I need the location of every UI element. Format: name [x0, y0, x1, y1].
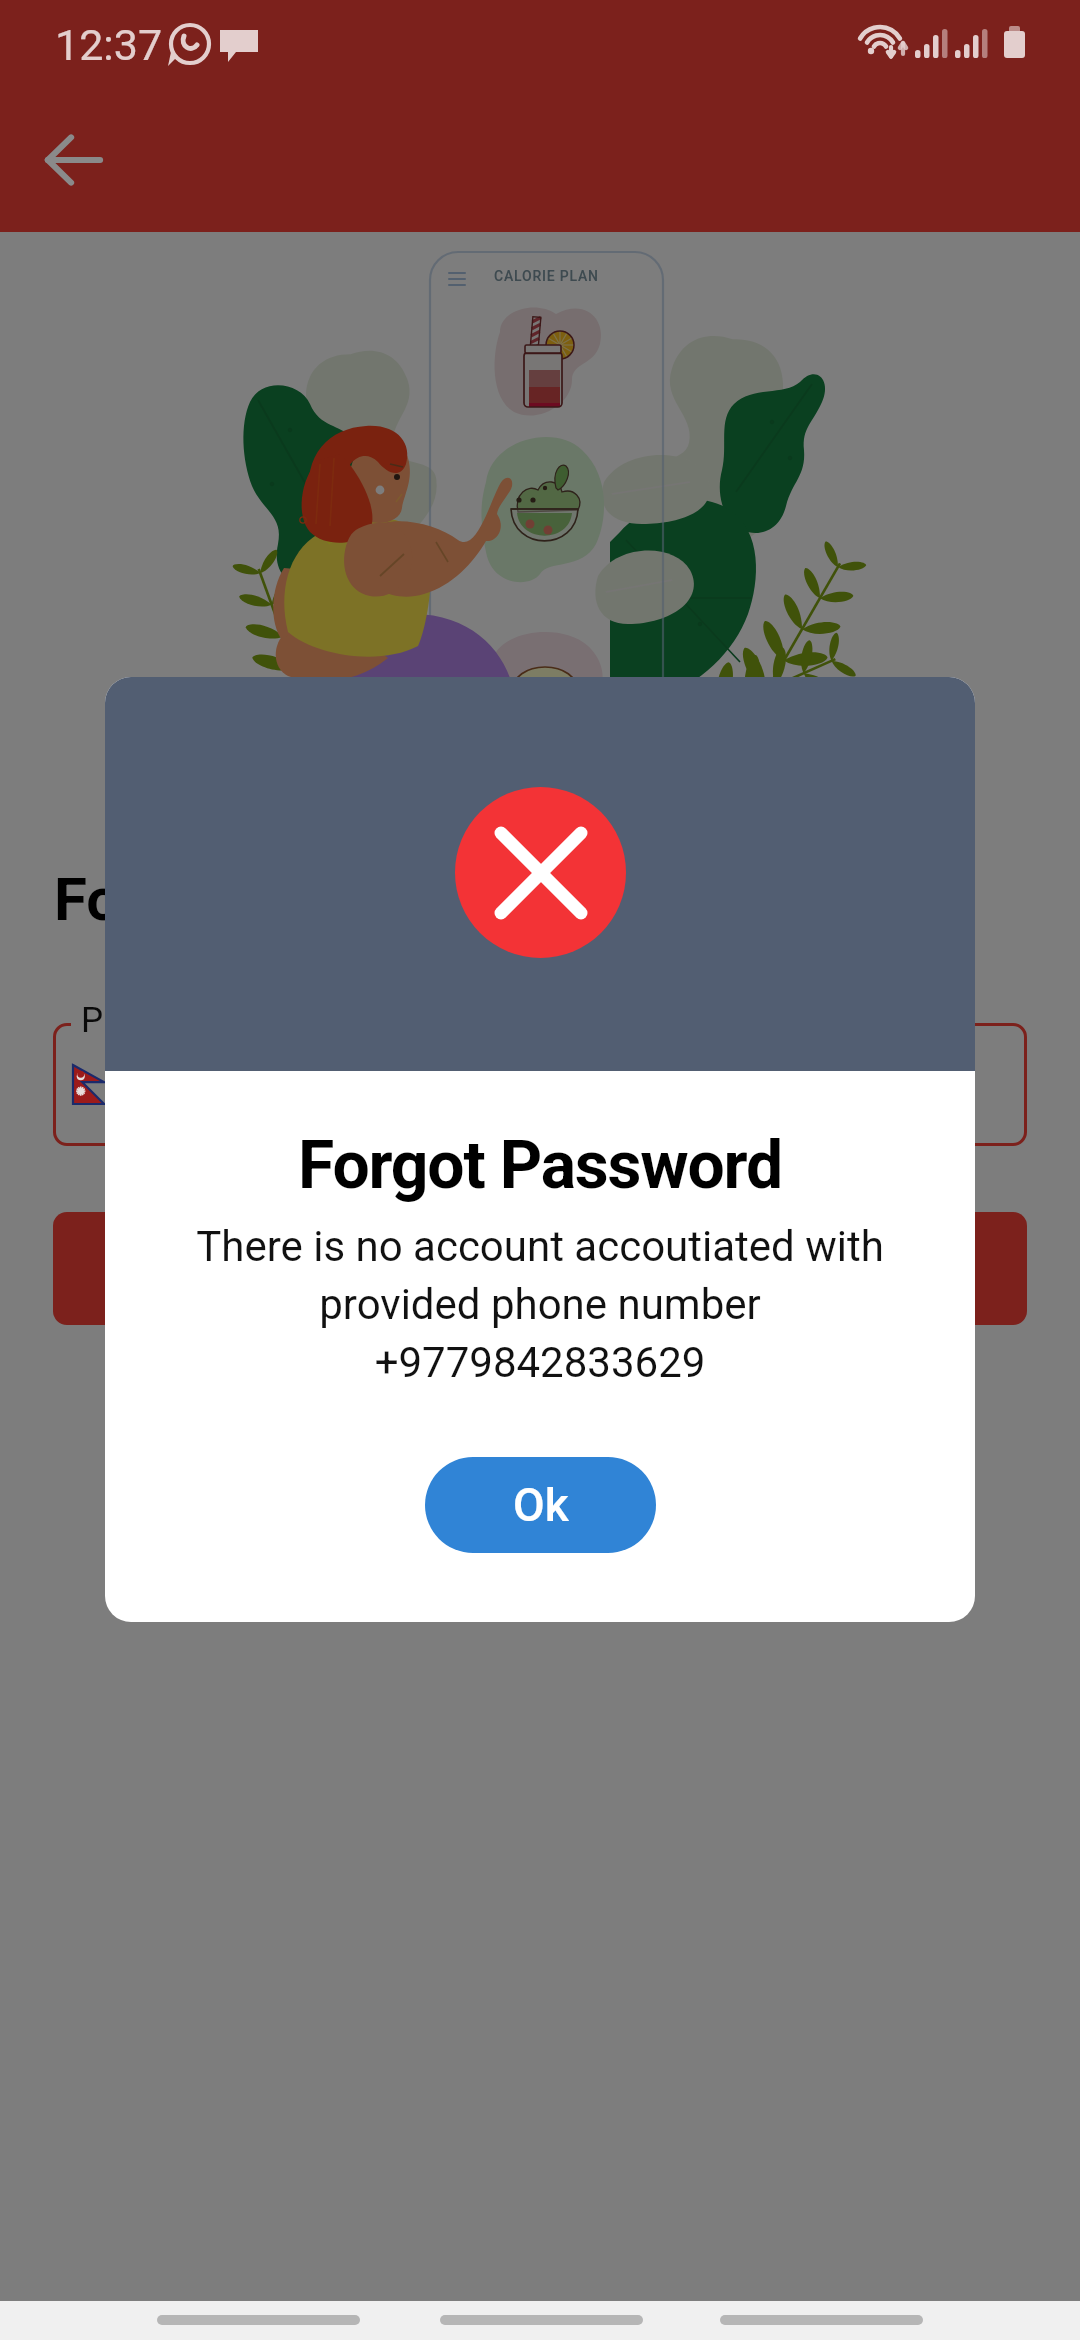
button[interactable]: Recents [720, 2315, 923, 2325]
button[interactable]: Back [157, 2315, 360, 2325]
staticText: 12:37 [55, 20, 163, 70]
button[interactable]: Home [440, 2315, 643, 2325]
staticText: Ok [513, 1478, 569, 1532]
staticText: There is no account accoutiated with pro… [190, 1222, 890, 1387]
button[interactable]: Ok [425, 1457, 656, 1553]
button[interactable]: Phone Number input [53, 1023, 1027, 1146]
staticText: Forgot Password [298, 1127, 782, 1204]
staticText: Phone Number [81, 1000, 314, 1041]
button[interactable]: SEND OTP [53, 1212, 1027, 1325]
staticText: CALORIE PLAN [494, 268, 599, 284]
staticText: SEND OTP [446, 1245, 634, 1292]
staticText: Forgot Password [54, 864, 511, 934]
staticText: +977 9842833629 [122, 1062, 431, 1107]
button[interactable]: Back [24, 110, 124, 210]
